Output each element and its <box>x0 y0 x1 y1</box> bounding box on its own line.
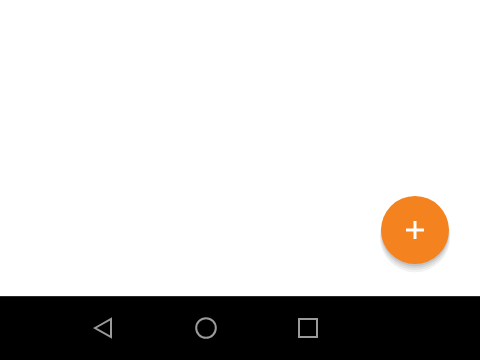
button[interactable]: Back <box>68 296 140 360</box>
button[interactable]: Recent apps <box>272 296 344 360</box>
button[interactable]: Add <box>381 196 449 264</box>
button[interactable]: Home <box>170 296 242 360</box>
